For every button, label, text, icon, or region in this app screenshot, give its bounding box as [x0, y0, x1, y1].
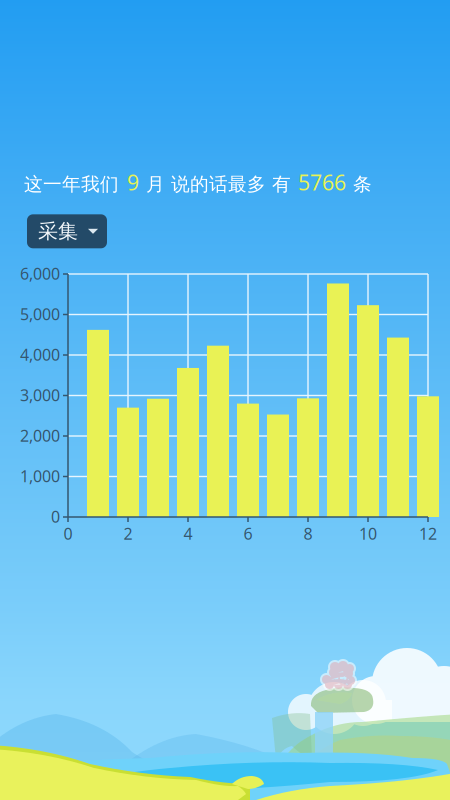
staticText: 5766: [298, 168, 346, 196]
staticText: 2: [123, 523, 132, 544]
staticText: 说的话最多: [171, 173, 266, 196]
staticText: 6: [243, 523, 252, 544]
staticText: 12: [419, 523, 437, 544]
staticText: 这一年我们: [24, 173, 119, 196]
staticText: 0: [51, 506, 60, 527]
staticText: 采集: [38, 219, 78, 244]
staticText: 5,000: [20, 303, 60, 325]
staticText: 条: [353, 173, 372, 196]
staticText: 4,000: [20, 344, 60, 365]
staticText: 有: [272, 173, 291, 196]
staticText: 9: [127, 168, 139, 196]
staticText: 月: [146, 173, 165, 196]
staticText: 10: [359, 523, 377, 544]
staticText: 6,000: [20, 263, 60, 284]
staticText: 1,000: [20, 465, 60, 487]
staticText: 2,000: [20, 425, 60, 446]
staticText: 0: [63, 523, 72, 544]
button[interactable]: 采集: [27, 214, 107, 248]
staticText: 8: [303, 523, 312, 544]
staticText: 3,000: [20, 384, 60, 406]
staticText: 4: [183, 523, 192, 544]
